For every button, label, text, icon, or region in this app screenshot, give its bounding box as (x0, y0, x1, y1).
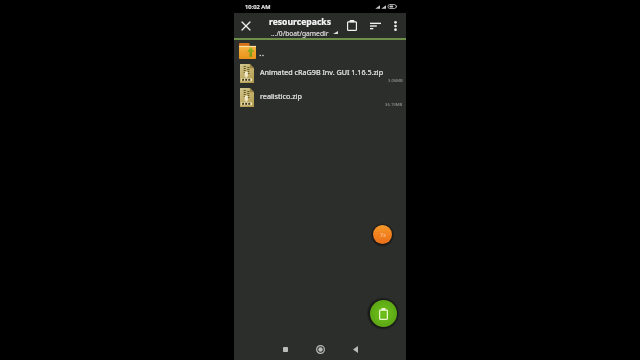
button[interactable]: Sort (364, 13, 386, 38)
button[interactable] (234, 40, 406, 61)
staticText: 36.19MB (385, 102, 403, 108)
button[interactable]: Close (234, 14, 258, 38)
button[interactable]: Paste (341, 13, 363, 38)
button[interactable]: Home (303, 338, 338, 360)
button[interactable]: Copy here (373, 225, 392, 244)
button[interactable]: Recents (268, 338, 303, 360)
button[interactable]: More options (386, 13, 404, 38)
staticText: 7z (380, 231, 386, 238)
staticText: realistico.zip (260, 91, 302, 101)
button[interactable]: Animated cRaG9B Inv. GUI 1.16.5.zip (234, 61, 406, 85)
staticText: 10:02 AM (245, 3, 271, 11)
staticText: .../0/boat/gamedir (271, 29, 329, 38)
staticText: resourcepacks (269, 16, 331, 28)
button[interactable]: Back (338, 338, 373, 360)
staticText: 3.06MB (388, 78, 403, 84)
button[interactable]: realistico.zip (234, 85, 406, 109)
button[interactable]: Paste (370, 300, 397, 327)
staticText: Animated cRaG9B Inv. GUI 1.16.5.zip (260, 67, 384, 77)
